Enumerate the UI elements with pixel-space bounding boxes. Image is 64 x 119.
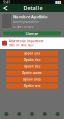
button[interactable]: Tab: [13, 109, 26, 119]
staticText: ▮▮▮: [55, 0, 61, 4]
staticText: Opción cuatro: [22, 71, 42, 75]
staticText: Opción tres: [24, 65, 40, 68]
button[interactable]: Opción cuatro: [6, 70, 58, 75]
staticText: sit amet consect: [13, 25, 34, 28]
staticText: Llamar: [25, 31, 38, 36]
button[interactable]: Llamar: [3, 31, 61, 35]
staticText: Advertencia importante: [9, 39, 44, 43]
staticText: Opción seis: [24, 84, 40, 88]
staticText: Opción cinco: [23, 78, 41, 81]
button[interactable]: Opción cinco: [6, 77, 58, 82]
staticText: Nombre Apellido: [13, 14, 48, 19]
staticText: Opción dos: [24, 58, 40, 62]
staticText: Opción uno: [23, 52, 40, 55]
button[interactable]: Opción dos: [6, 57, 58, 62]
staticText: Detalle: [23, 4, 42, 12]
staticText: 9:41: [3, 0, 10, 5]
button[interactable]: Tab: [51, 109, 64, 119]
button[interactable]: Back: [3, 5, 8, 10]
button[interactable]: Opción seis: [6, 83, 58, 88]
staticText: Lorem ipsum dolor: [13, 20, 39, 24]
button[interactable]: Tab: [26, 109, 38, 119]
button[interactable]: Tab: [38, 109, 51, 119]
staticText: texto de aviso aqui: [9, 43, 34, 47]
button[interactable]: Opción tres: [6, 64, 58, 69]
button[interactable]: Tab: [0, 109, 13, 119]
button[interactable]: Opción uno: [6, 51, 58, 56]
